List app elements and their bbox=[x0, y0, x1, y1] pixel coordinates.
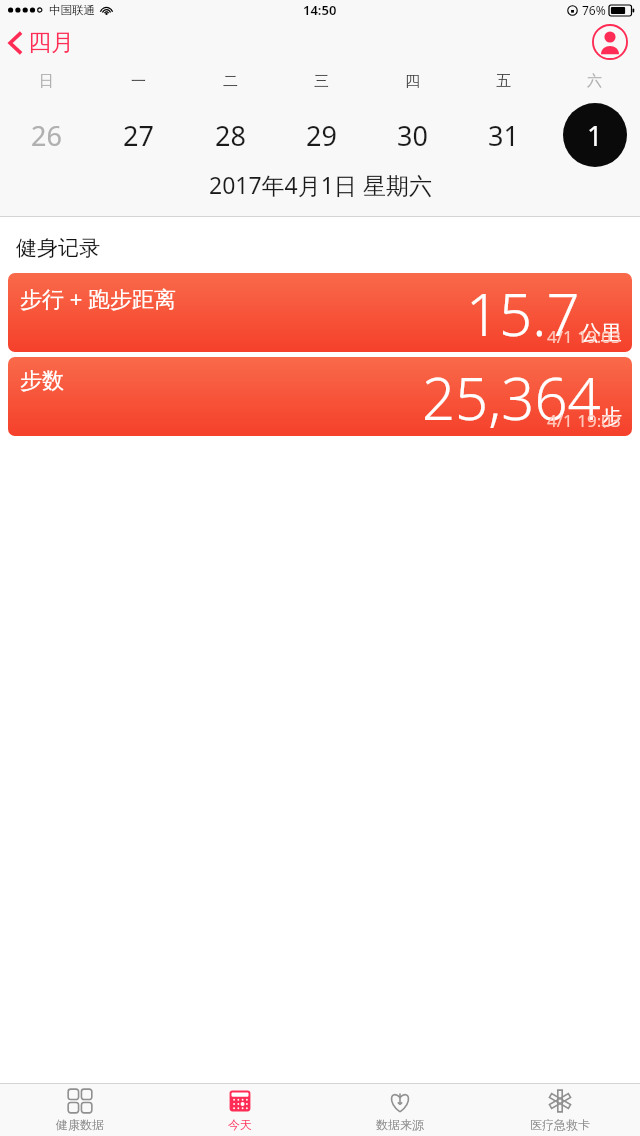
staticText: 中国联通 bbox=[49, 3, 95, 17]
staticText: 4/1 19:03 bbox=[547, 409, 621, 432]
staticText: 步数 bbox=[20, 367, 64, 395]
button[interactable]: 今天 bbox=[160, 1084, 320, 1136]
button[interactable]: 步行 + 跑步距离 bbox=[8, 273, 632, 352]
button[interactable]: 1 bbox=[549, 103, 640, 167]
staticText: 一 bbox=[131, 72, 146, 91]
button[interactable]: 27 bbox=[92, 103, 184, 167]
staticText: 30 bbox=[397, 117, 428, 154]
staticText: 28 bbox=[215, 117, 246, 154]
staticText: 日 bbox=[39, 72, 54, 91]
staticText: 27 bbox=[123, 117, 154, 154]
staticText: 2017年4月1日 星期六 bbox=[209, 169, 432, 200]
staticText: 二 bbox=[223, 72, 238, 91]
staticText: 29 bbox=[306, 117, 337, 154]
staticText: 六 bbox=[587, 72, 602, 91]
staticText: 26 bbox=[31, 117, 62, 154]
staticText: 四月 bbox=[28, 28, 74, 57]
button[interactable]: Profile bbox=[592, 24, 628, 60]
staticText: 4/1 19:03 bbox=[547, 325, 621, 348]
staticText: 数据来源 bbox=[376, 1117, 424, 1132]
staticText: 四 bbox=[405, 72, 420, 91]
staticText: 15.7 bbox=[466, 274, 580, 352]
button[interactable]: 31 bbox=[458, 103, 549, 167]
button[interactable]: 健康数据 bbox=[0, 1084, 160, 1136]
staticText: 14:50 bbox=[303, 1, 337, 19]
staticText: 五 bbox=[496, 72, 511, 91]
button[interactable]: 步数 bbox=[8, 357, 632, 436]
button[interactable]: 26 bbox=[0, 103, 92, 167]
button[interactable]: 30 bbox=[367, 103, 458, 167]
staticText: 1 bbox=[587, 117, 603, 154]
staticText: 步行 + 跑步距离 bbox=[20, 283, 177, 313]
staticText: 健康数据 bbox=[56, 1117, 104, 1132]
staticText: 三 bbox=[314, 72, 329, 91]
staticText: 76% bbox=[582, 2, 606, 18]
button[interactable]: 医疗急救卡 bbox=[480, 1084, 640, 1136]
staticText: 健身记录 bbox=[16, 235, 100, 261]
staticText: 医疗急救卡 bbox=[530, 1117, 590, 1132]
staticText: 25,364 bbox=[422, 358, 601, 436]
button[interactable]: 四月 bbox=[0, 24, 86, 61]
staticText: 步 bbox=[601, 404, 622, 430]
staticText: 公里 bbox=[580, 320, 622, 346]
staticText: 今天 bbox=[228, 1117, 252, 1132]
button[interactable]: 数据来源 bbox=[320, 1084, 480, 1136]
staticText: 31 bbox=[488, 117, 519, 154]
button[interactable]: 29 bbox=[276, 103, 367, 167]
button[interactable]: 28 bbox=[184, 103, 276, 167]
